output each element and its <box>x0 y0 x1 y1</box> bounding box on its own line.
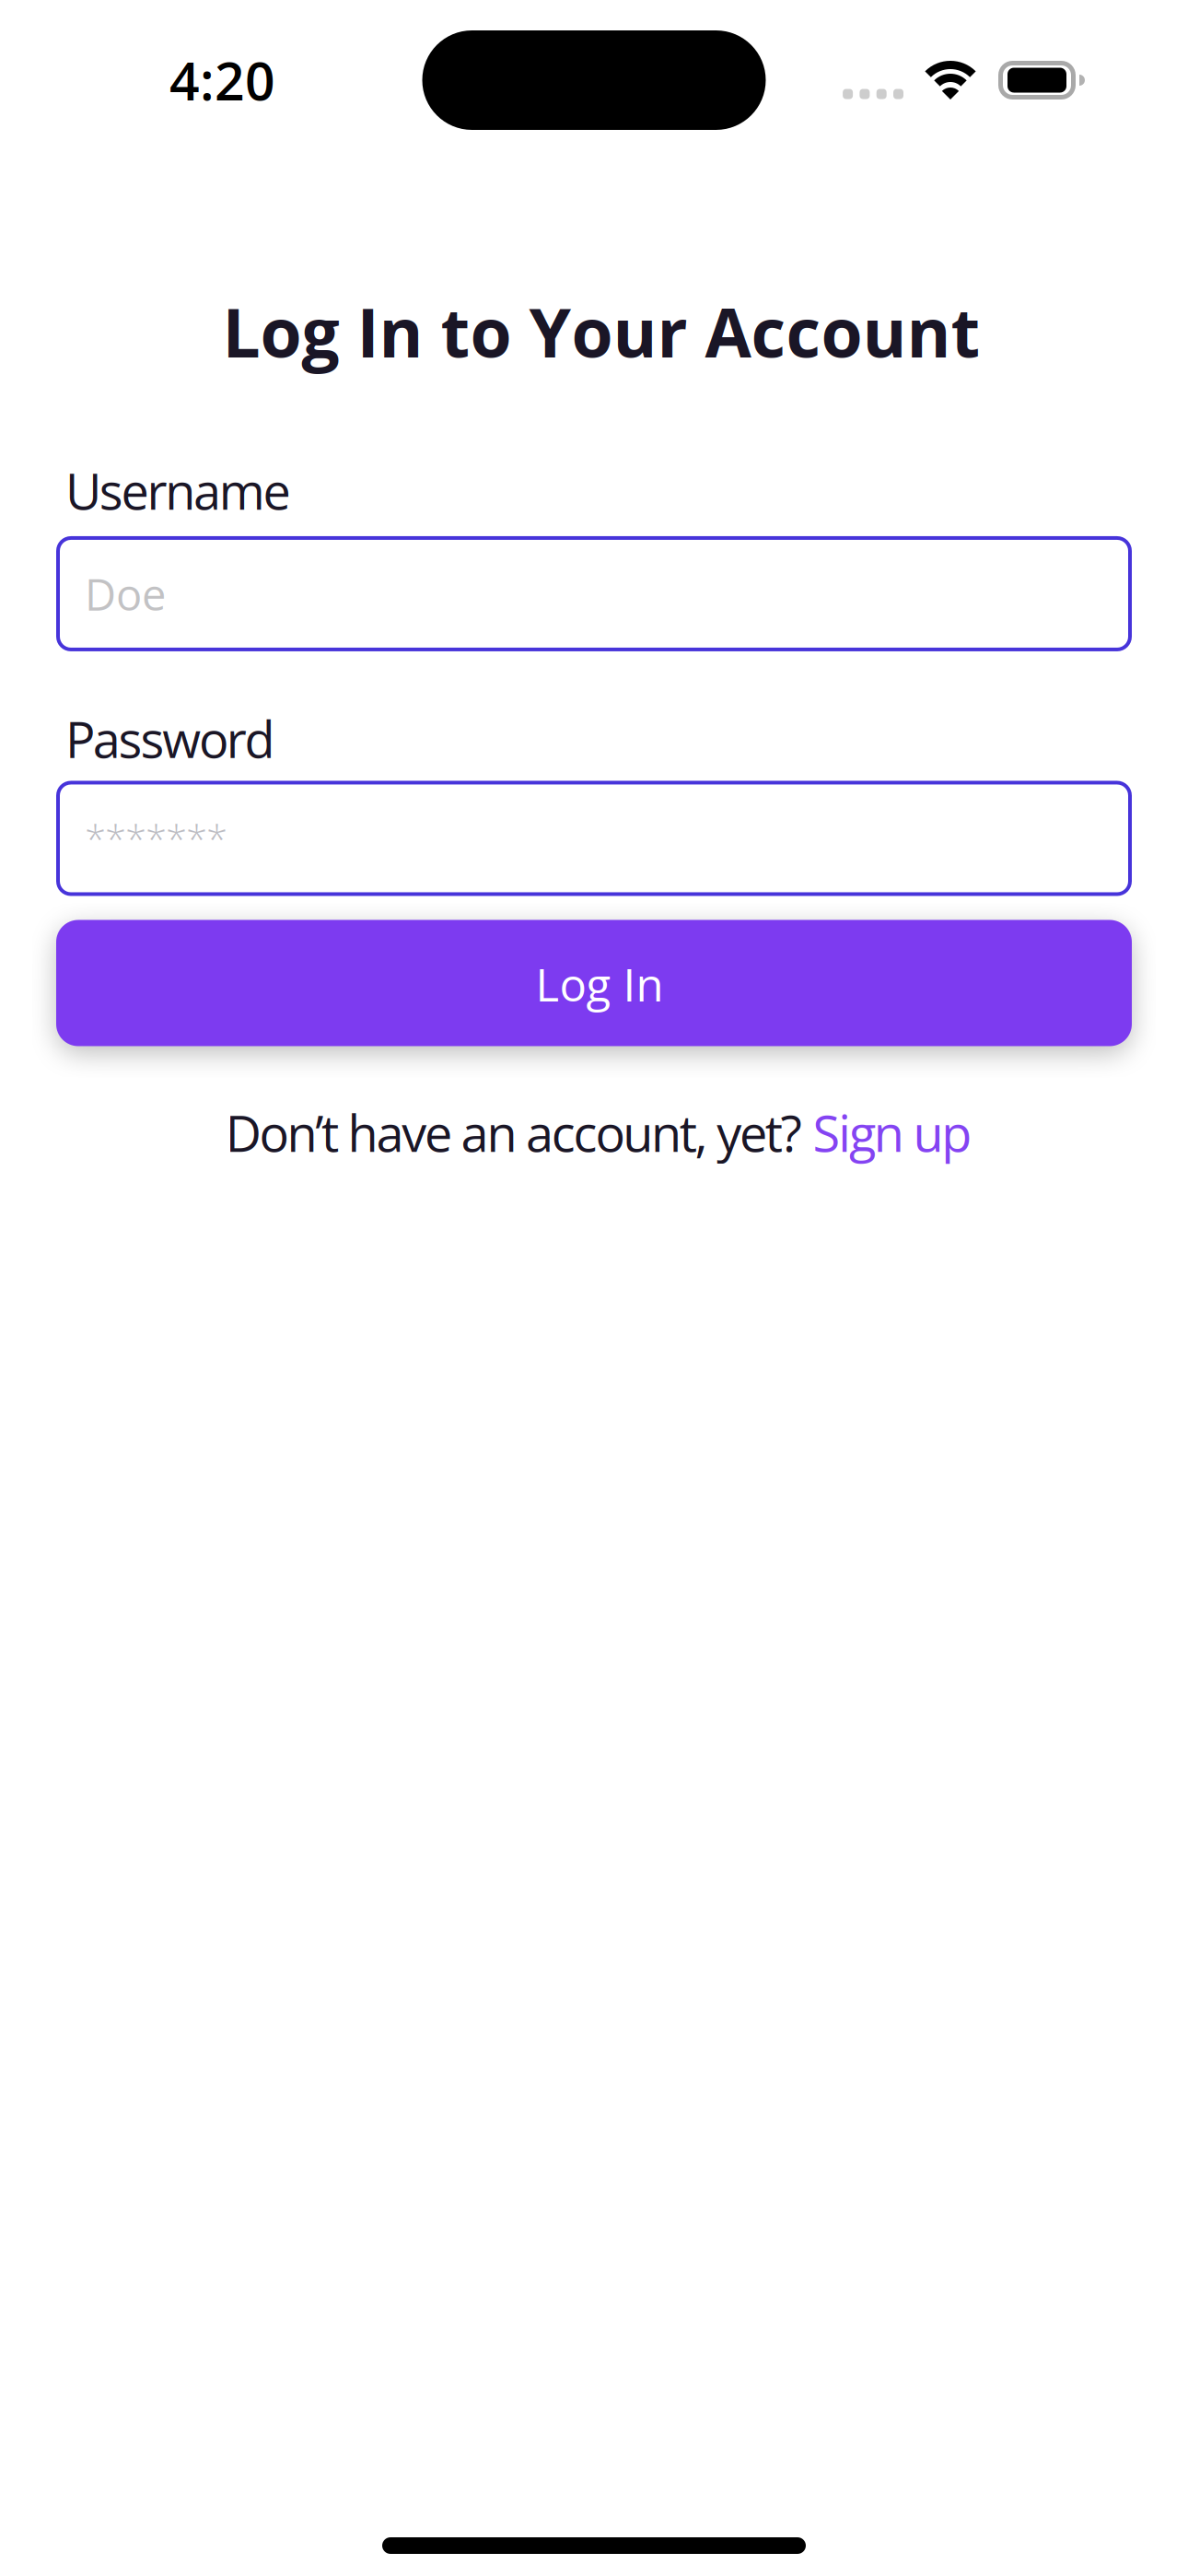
button[interactable]: Sign up <box>813 1099 972 1166</box>
staticText: Don’t have an account, yet? <box>225 1099 813 1166</box>
staticText: 4:20 <box>169 44 275 116</box>
staticText: Log In <box>536 953 664 1015</box>
staticText: Log In to Your Account <box>222 286 980 377</box>
staticText: Sign up <box>813 1099 972 1166</box>
staticText: Username <box>65 456 291 524</box>
staticText: Doe <box>85 564 166 623</box>
button[interactable]: Log In <box>56 920 1132 1046</box>
staticText: Password <box>65 705 275 773</box>
staticText: ******* <box>85 812 227 865</box>
button[interactable]: Doe <box>56 536 1132 651</box>
button[interactable]: ******* <box>56 781 1132 896</box>
